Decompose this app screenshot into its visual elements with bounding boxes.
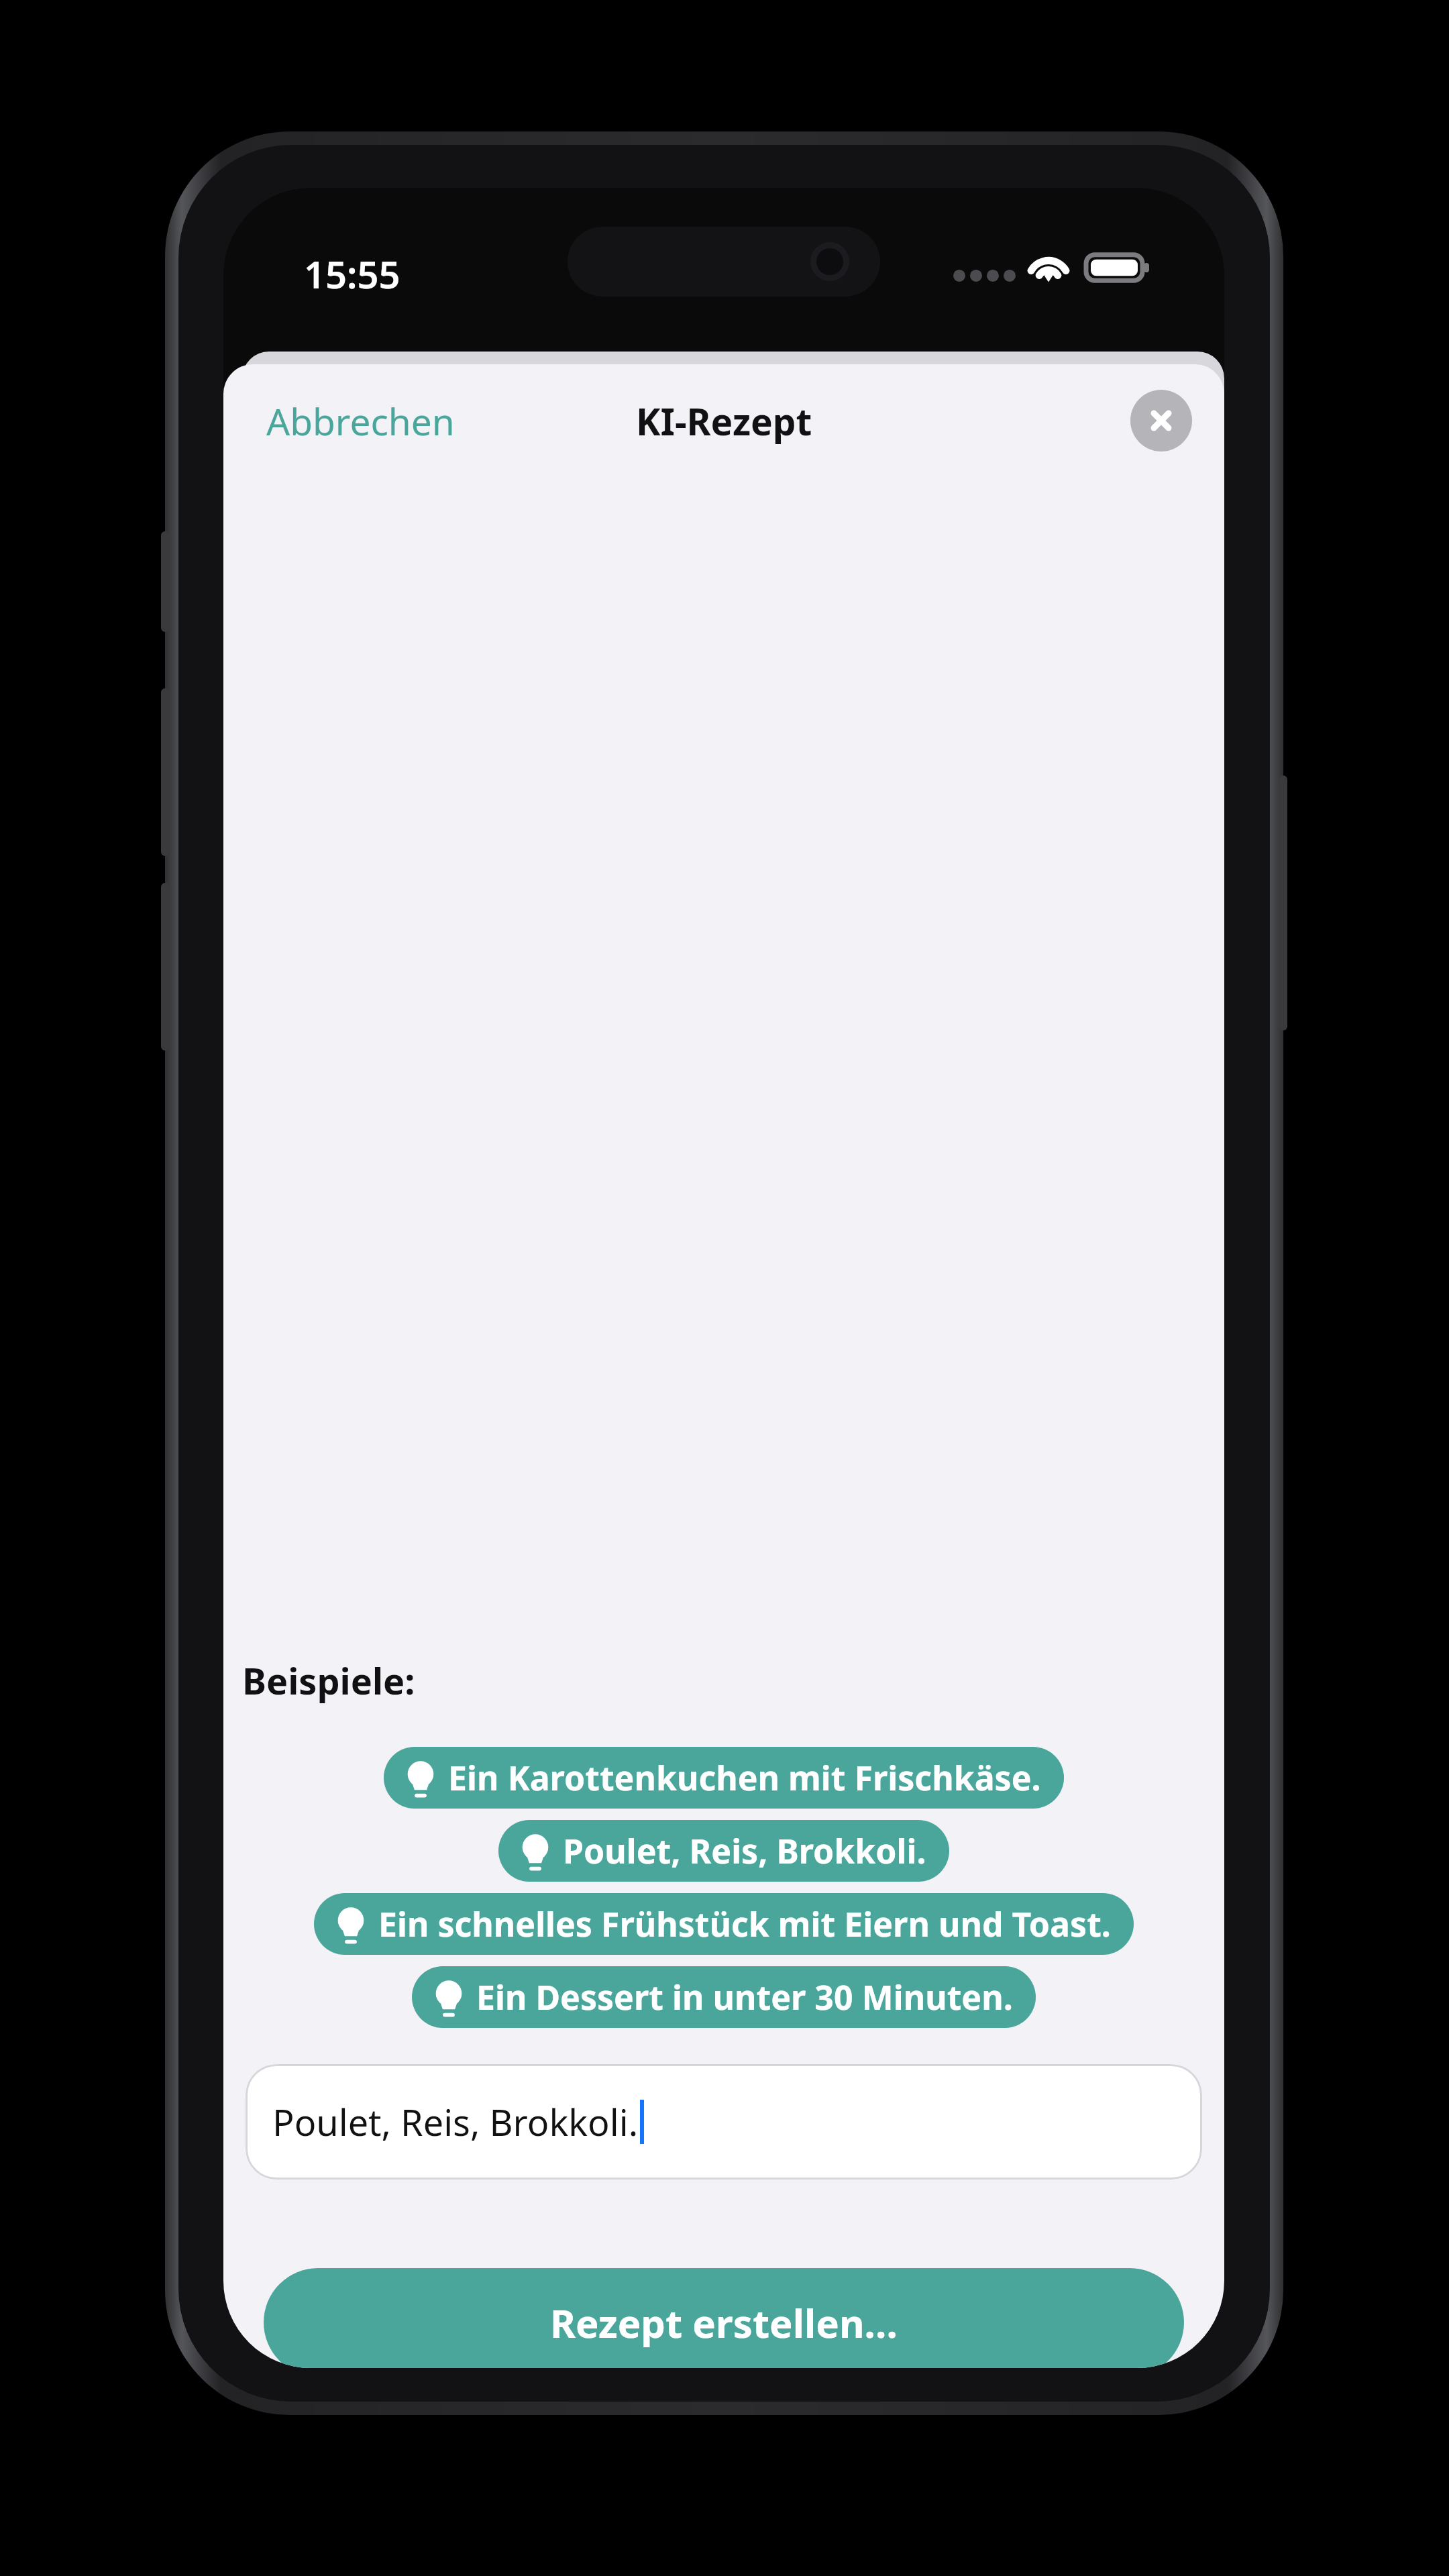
- staticText: Poulet, Reis, Brokkoli.: [272, 2097, 639, 2147]
- staticText: Ein schnelles Frühstück mit Eiern und To…: [378, 1901, 1111, 1947]
- staticText: KI-Rezept: [636, 396, 812, 446]
- staticText: 15:55: [304, 248, 400, 299]
- button[interactable]: Ein Dessert in unter 30 Minuten.: [412, 1966, 1036, 2028]
- button[interactable]: Abbrechen: [250, 386, 471, 455]
- staticText: Poulet, Reis, Brokkoli.: [563, 1828, 926, 1874]
- staticText: Ein Karottenkuchen mit Frischkäse.: [448, 1755, 1041, 1801]
- staticText: Abbrechen: [266, 396, 455, 446]
- staticText: Rezept erstellen…: [550, 2296, 898, 2349]
- staticText: Beispiele:: [242, 1656, 415, 1705]
- button[interactable]: Schließen: [1130, 390, 1192, 451]
- button[interactable]: Poulet, Reis, Brokkoli.: [498, 1820, 949, 1882]
- button[interactable]: Rezept erstellen…: [264, 2268, 1184, 2368]
- button[interactable]: Poulet, Reis, Brokkoli.: [246, 2064, 1202, 2180]
- staticText: Ein Dessert in unter 30 Minuten.: [476, 1974, 1013, 2020]
- button[interactable]: Ein schnelles Frühstück mit Eiern und To…: [314, 1893, 1134, 1955]
- button[interactable]: Ein Karottenkuchen mit Frischkäse.: [384, 1747, 1064, 1809]
